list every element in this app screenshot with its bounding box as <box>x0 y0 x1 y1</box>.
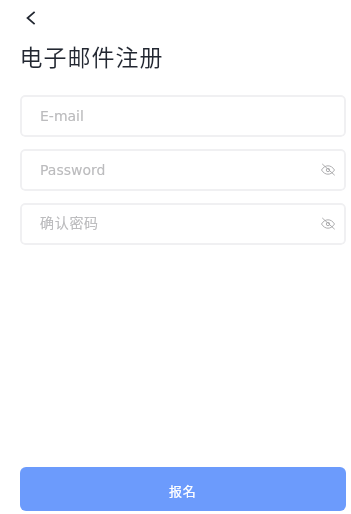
button[interactable]: 报名 <box>20 467 346 511</box>
button[interactable]: 确认密码 <box>20 203 346 245</box>
button[interactable]: Password <box>20 149 346 191</box>
button[interactable]: Toggle password visibility <box>317 213 339 235</box>
staticText: 确认密码 <box>40 212 99 232</box>
button[interactable]: Back <box>13 0 49 36</box>
staticText: 电子邮件注册 <box>19 39 163 72</box>
staticText: E-mail <box>40 108 84 124</box>
button[interactable]: Toggle password visibility <box>317 159 339 181</box>
staticText: 报名 <box>169 481 197 500</box>
button[interactable]: E-mail <box>20 95 346 137</box>
staticText: Password <box>40 162 106 178</box>
